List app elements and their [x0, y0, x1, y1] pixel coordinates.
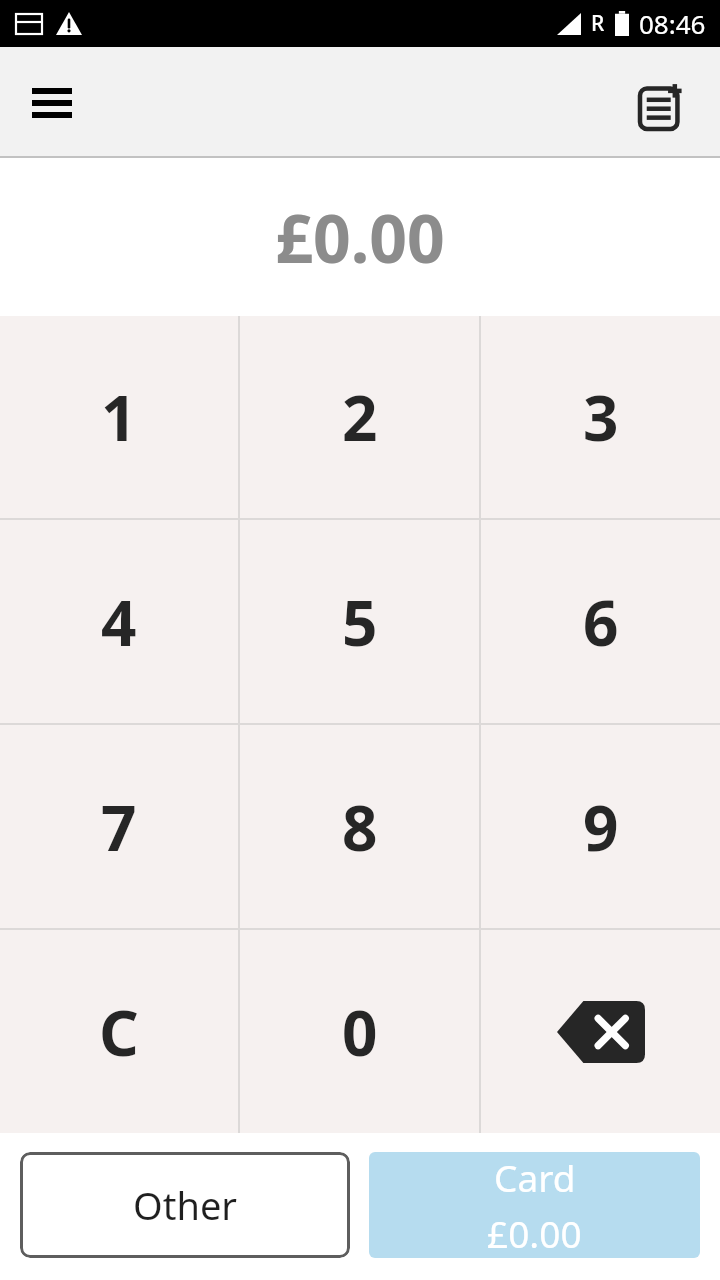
- staticText: 6: [583, 580, 619, 664]
- staticText: 9: [583, 785, 619, 869]
- staticText: C: [99, 990, 139, 1074]
- button[interactable]: Backspace: [481, 930, 720, 1133]
- button[interactable]: 2: [240, 316, 479, 518]
- button[interactable]: Other: [20, 1152, 350, 1258]
- staticText: 5: [342, 580, 378, 664]
- button[interactable]: 4: [0, 520, 238, 723]
- button[interactable]: 0: [240, 930, 479, 1133]
- staticText: Other: [133, 1179, 238, 1231]
- staticText: 7: [101, 785, 137, 869]
- staticText: 4: [101, 580, 137, 664]
- button[interactable]: 3: [481, 316, 720, 518]
- button[interactable]: 6: [481, 520, 720, 723]
- staticText: Card: [494, 1152, 576, 1202]
- button[interactable]: 5: [240, 520, 479, 723]
- staticText: £0.00: [275, 192, 445, 282]
- button[interactable]: Menu: [16, 67, 88, 139]
- staticText: 2: [342, 375, 378, 459]
- staticText: 0: [342, 990, 378, 1074]
- button[interactable]: 7: [0, 725, 238, 928]
- staticText: 8: [342, 785, 378, 869]
- button[interactable]: New sale: [630, 67, 702, 139]
- button[interactable]: C: [0, 930, 238, 1133]
- staticText: 3: [583, 375, 619, 459]
- button[interactable]: 8: [240, 725, 479, 928]
- staticText: 1: [101, 375, 137, 459]
- button[interactable]: Card: [369, 1152, 700, 1258]
- button[interactable]: 9: [481, 725, 720, 928]
- staticText: 08:46: [639, 6, 706, 41]
- staticText: £0.00: [487, 1208, 582, 1258]
- button[interactable]: 1: [0, 316, 238, 518]
- staticText: R: [591, 9, 605, 38]
